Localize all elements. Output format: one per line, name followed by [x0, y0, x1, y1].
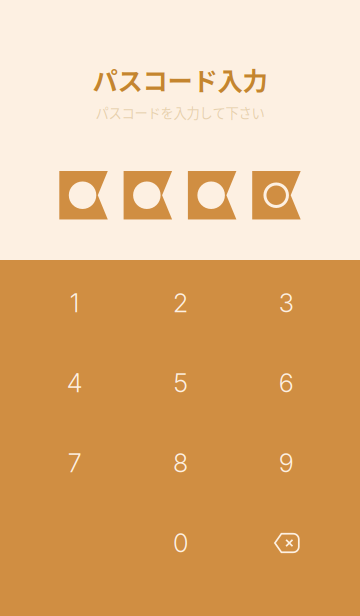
button[interactable]: 3 — [233, 263, 339, 343]
staticText: 0 — [173, 528, 188, 558]
staticText: 6 — [279, 368, 294, 398]
button[interactable]: 6 — [233, 343, 339, 423]
staticText: 1 — [70, 288, 80, 318]
staticText: 3 — [279, 288, 294, 318]
button[interactable]: 5 — [128, 343, 233, 423]
staticText: 2 — [173, 288, 188, 318]
staticText: 5 — [173, 368, 187, 398]
staticText: パスコード入力 — [92, 61, 267, 98]
button[interactable]: 4 — [22, 343, 128, 423]
button[interactable]: 7 — [22, 423, 128, 503]
button[interactable]: 2 — [128, 263, 233, 343]
staticText: 9 — [279, 448, 294, 478]
staticText: パスコードを入力して下さい — [95, 103, 264, 122]
button[interactable]: 8 — [128, 423, 233, 503]
button[interactable]: Delete — [233, 503, 339, 583]
staticText: 7 — [68, 448, 82, 478]
button[interactable]: 0 — [128, 503, 233, 583]
staticText: 8 — [173, 448, 188, 478]
button[interactable]: 1 — [22, 263, 128, 343]
staticText: 4 — [67, 368, 83, 398]
button[interactable]: 9 — [233, 423, 339, 503]
